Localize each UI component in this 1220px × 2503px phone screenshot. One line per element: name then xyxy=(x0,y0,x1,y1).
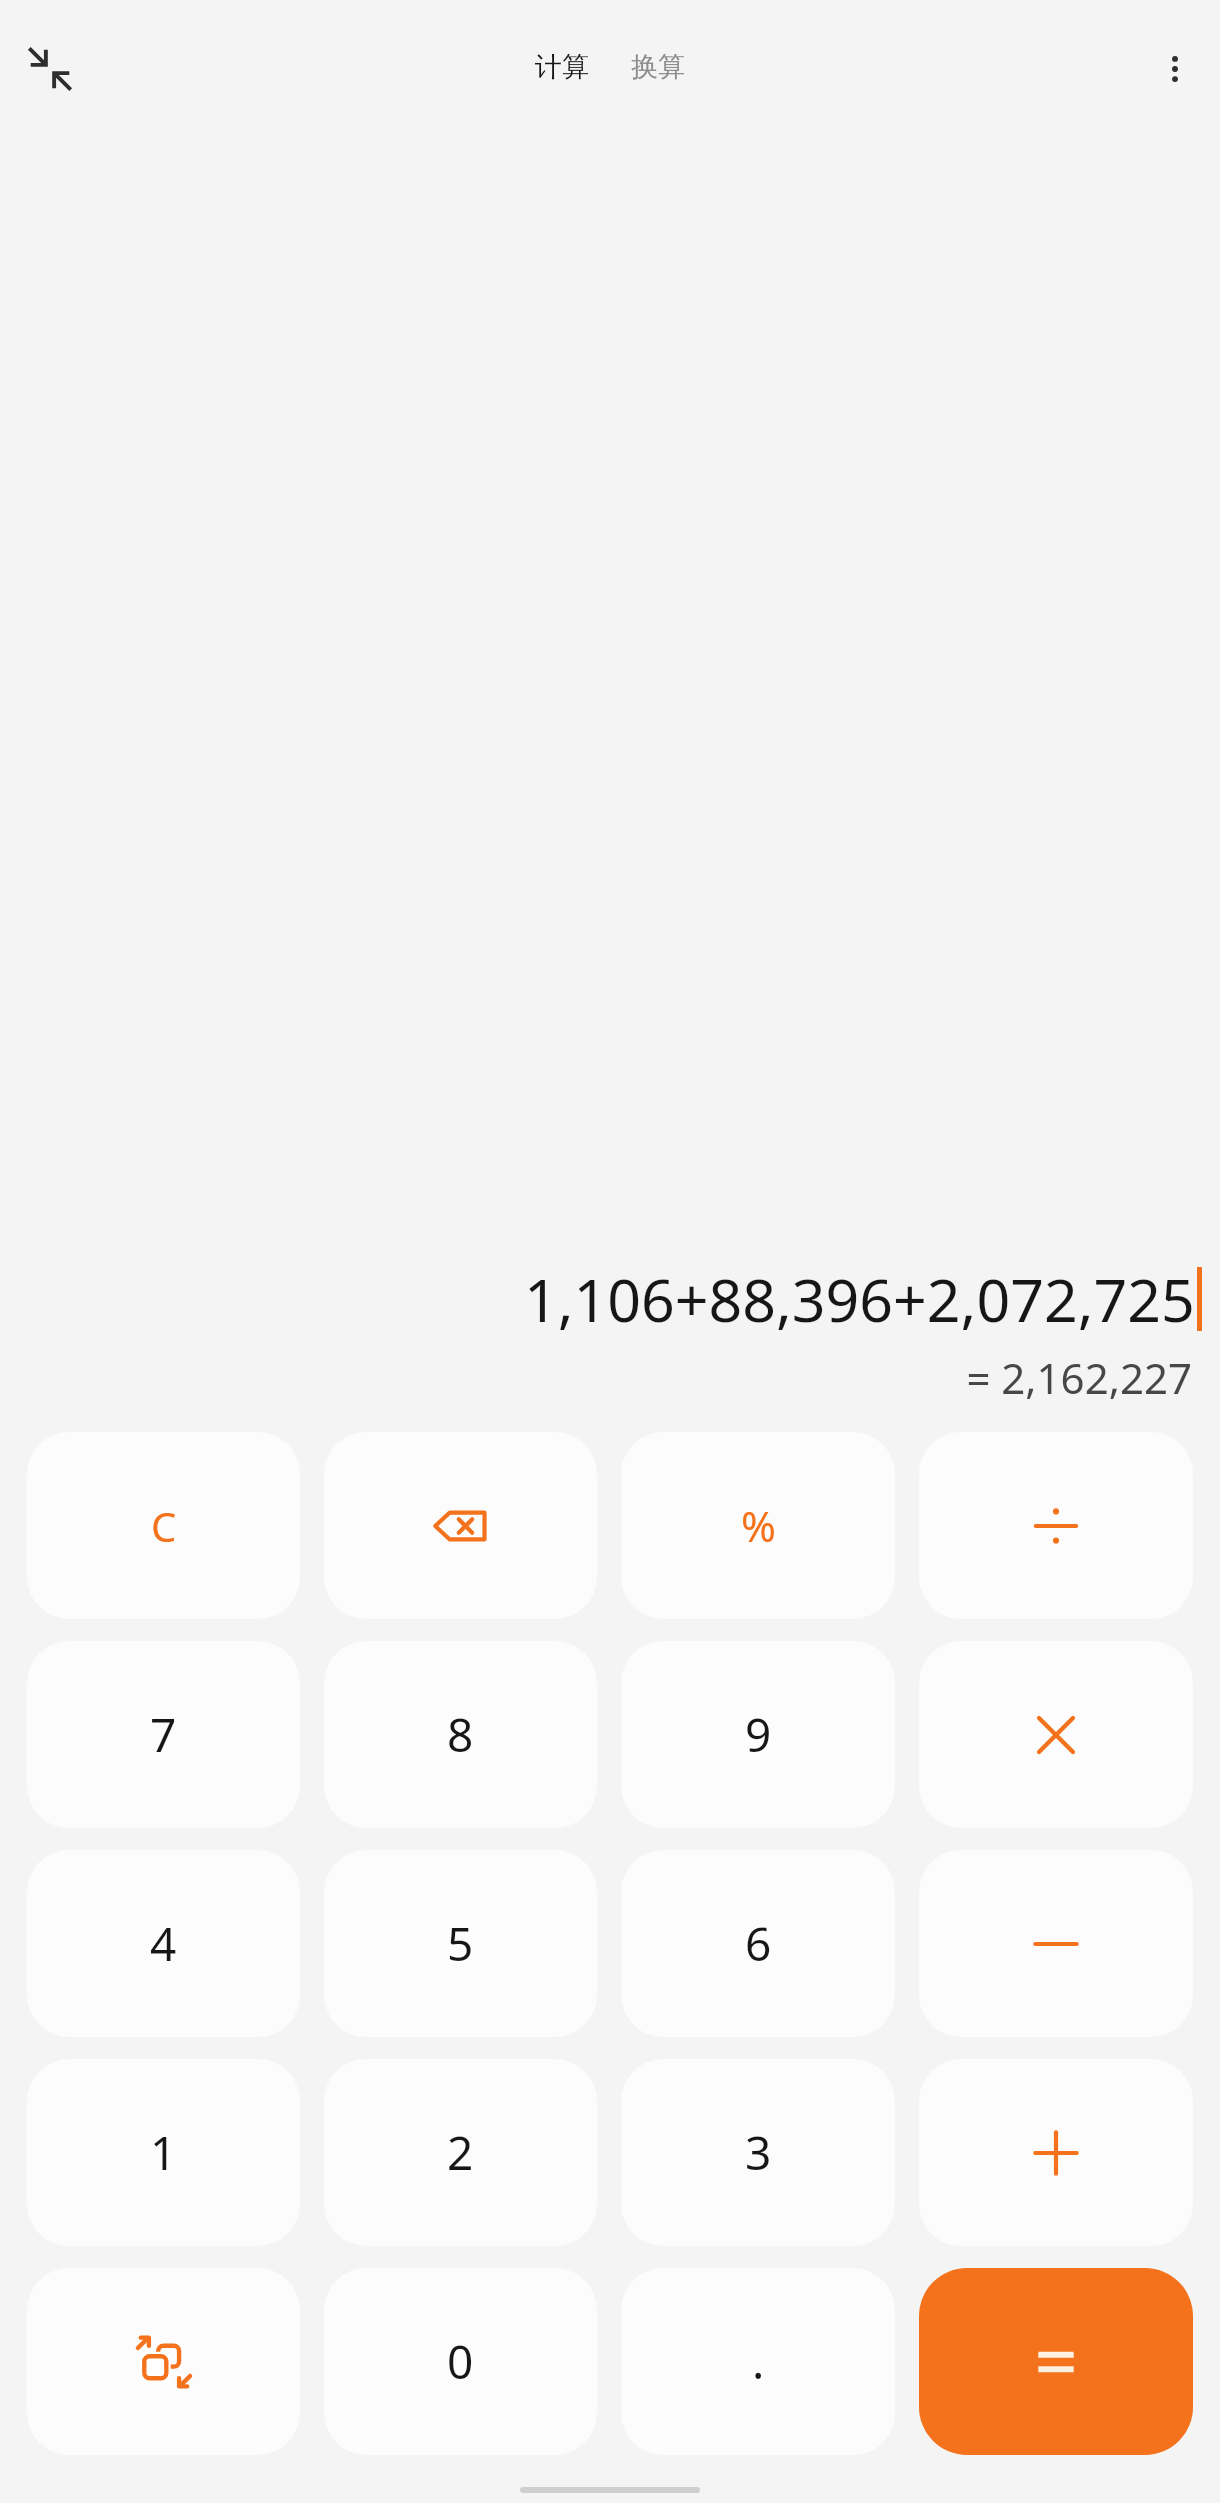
button[interactable]: 4 xyxy=(27,1850,300,2037)
button[interactable]: 计算 xyxy=(523,42,601,92)
button[interactable]: Equals xyxy=(919,2268,1193,2455)
button[interactable]: Minus xyxy=(919,1850,1193,2037)
staticText: 8 xyxy=(447,1703,474,1766)
button[interactable]: 6 xyxy=(621,1850,895,2037)
staticText: 计算 xyxy=(535,50,589,84)
staticText: 3 xyxy=(745,2121,772,2184)
staticText: 0 xyxy=(447,2330,474,2393)
staticText: = 2,162,227 xyxy=(22,1349,1192,1406)
button[interactable]: 7 xyxy=(27,1641,300,1828)
staticText: C xyxy=(151,1499,177,1553)
button[interactable]: Backspace xyxy=(324,1432,597,1619)
button[interactable]: Divide xyxy=(919,1432,1193,1619)
staticText: 7 xyxy=(150,1703,177,1766)
staticText: 换算 xyxy=(631,50,685,84)
button[interactable]: . xyxy=(621,2268,895,2455)
button[interactable]: 0 xyxy=(324,2268,597,2455)
button[interactable]: % xyxy=(621,1432,895,1619)
button[interactable]: 2 xyxy=(324,2059,597,2246)
button[interactable]: Unit converter xyxy=(27,2268,300,2455)
button[interactable]: 换算 xyxy=(619,42,697,92)
staticText: 1 xyxy=(150,2121,177,2184)
button[interactable]: More options xyxy=(1142,36,1208,102)
staticText: % xyxy=(741,1497,776,1554)
staticText: . xyxy=(752,2330,765,2393)
button[interactable]: C xyxy=(27,1432,300,1619)
staticText: 6 xyxy=(745,1912,772,1975)
staticText: 5 xyxy=(447,1912,474,1975)
button[interactable]: Multiply xyxy=(919,1641,1193,1828)
button[interactable]: 9 xyxy=(621,1641,895,1828)
button[interactable]: Plus xyxy=(919,2059,1193,2246)
button[interactable]: 3 xyxy=(621,2059,895,2246)
staticText: 2 xyxy=(447,2121,474,2184)
button[interactable]: Collapse xyxy=(14,33,86,105)
staticText: 4 xyxy=(150,1912,177,1975)
button[interactable]: 1 xyxy=(27,2059,300,2246)
staticText: 9 xyxy=(745,1703,772,1766)
button[interactable]: 8 xyxy=(324,1641,597,1828)
button[interactable]: 5 xyxy=(324,1850,597,2037)
staticText: 1,106+88,396+2,072,725 xyxy=(524,1259,1195,1339)
